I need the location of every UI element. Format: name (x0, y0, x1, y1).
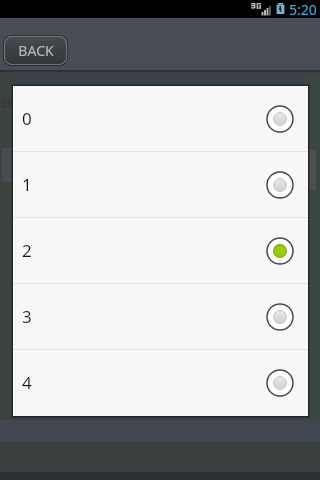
other: Not selected (264, 301, 296, 333)
staticText: 4 (22, 371, 32, 394)
other: Not selected (264, 169, 296, 201)
button[interactable]: 4 (13, 350, 308, 415)
other: Not selected (264, 103, 296, 135)
staticText: 5:20 (289, 0, 317, 18)
staticText: 3 (22, 305, 32, 328)
staticText: BACK (18, 41, 54, 60)
staticText: Se (1, 95, 14, 110)
button[interactable]: BACK (3, 35, 68, 66)
button[interactable]: 2 (13, 218, 308, 283)
button[interactable]: 1 (13, 152, 308, 217)
staticText: 1 (22, 173, 32, 196)
other: Selected (264, 235, 296, 267)
staticText: 0 (22, 107, 32, 130)
button[interactable]: 0 (13, 86, 308, 151)
staticText: 2 (22, 239, 32, 262)
other: Not selected (264, 367, 296, 399)
button[interactable]: 3 (13, 284, 308, 349)
